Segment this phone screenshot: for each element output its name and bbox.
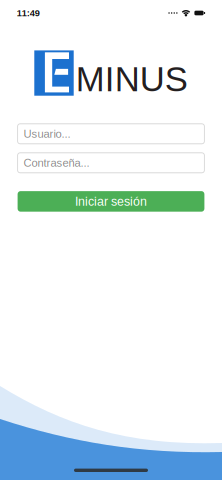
staticText: Contraseña... xyxy=(24,156,90,169)
staticText: 11:49 xyxy=(17,8,40,18)
staticText: MINUS xyxy=(76,60,188,99)
staticText: Usuario... xyxy=(24,127,71,140)
staticText: Iniciar sesión xyxy=(75,194,147,208)
button[interactable]: Iniciar sesión xyxy=(18,191,204,212)
